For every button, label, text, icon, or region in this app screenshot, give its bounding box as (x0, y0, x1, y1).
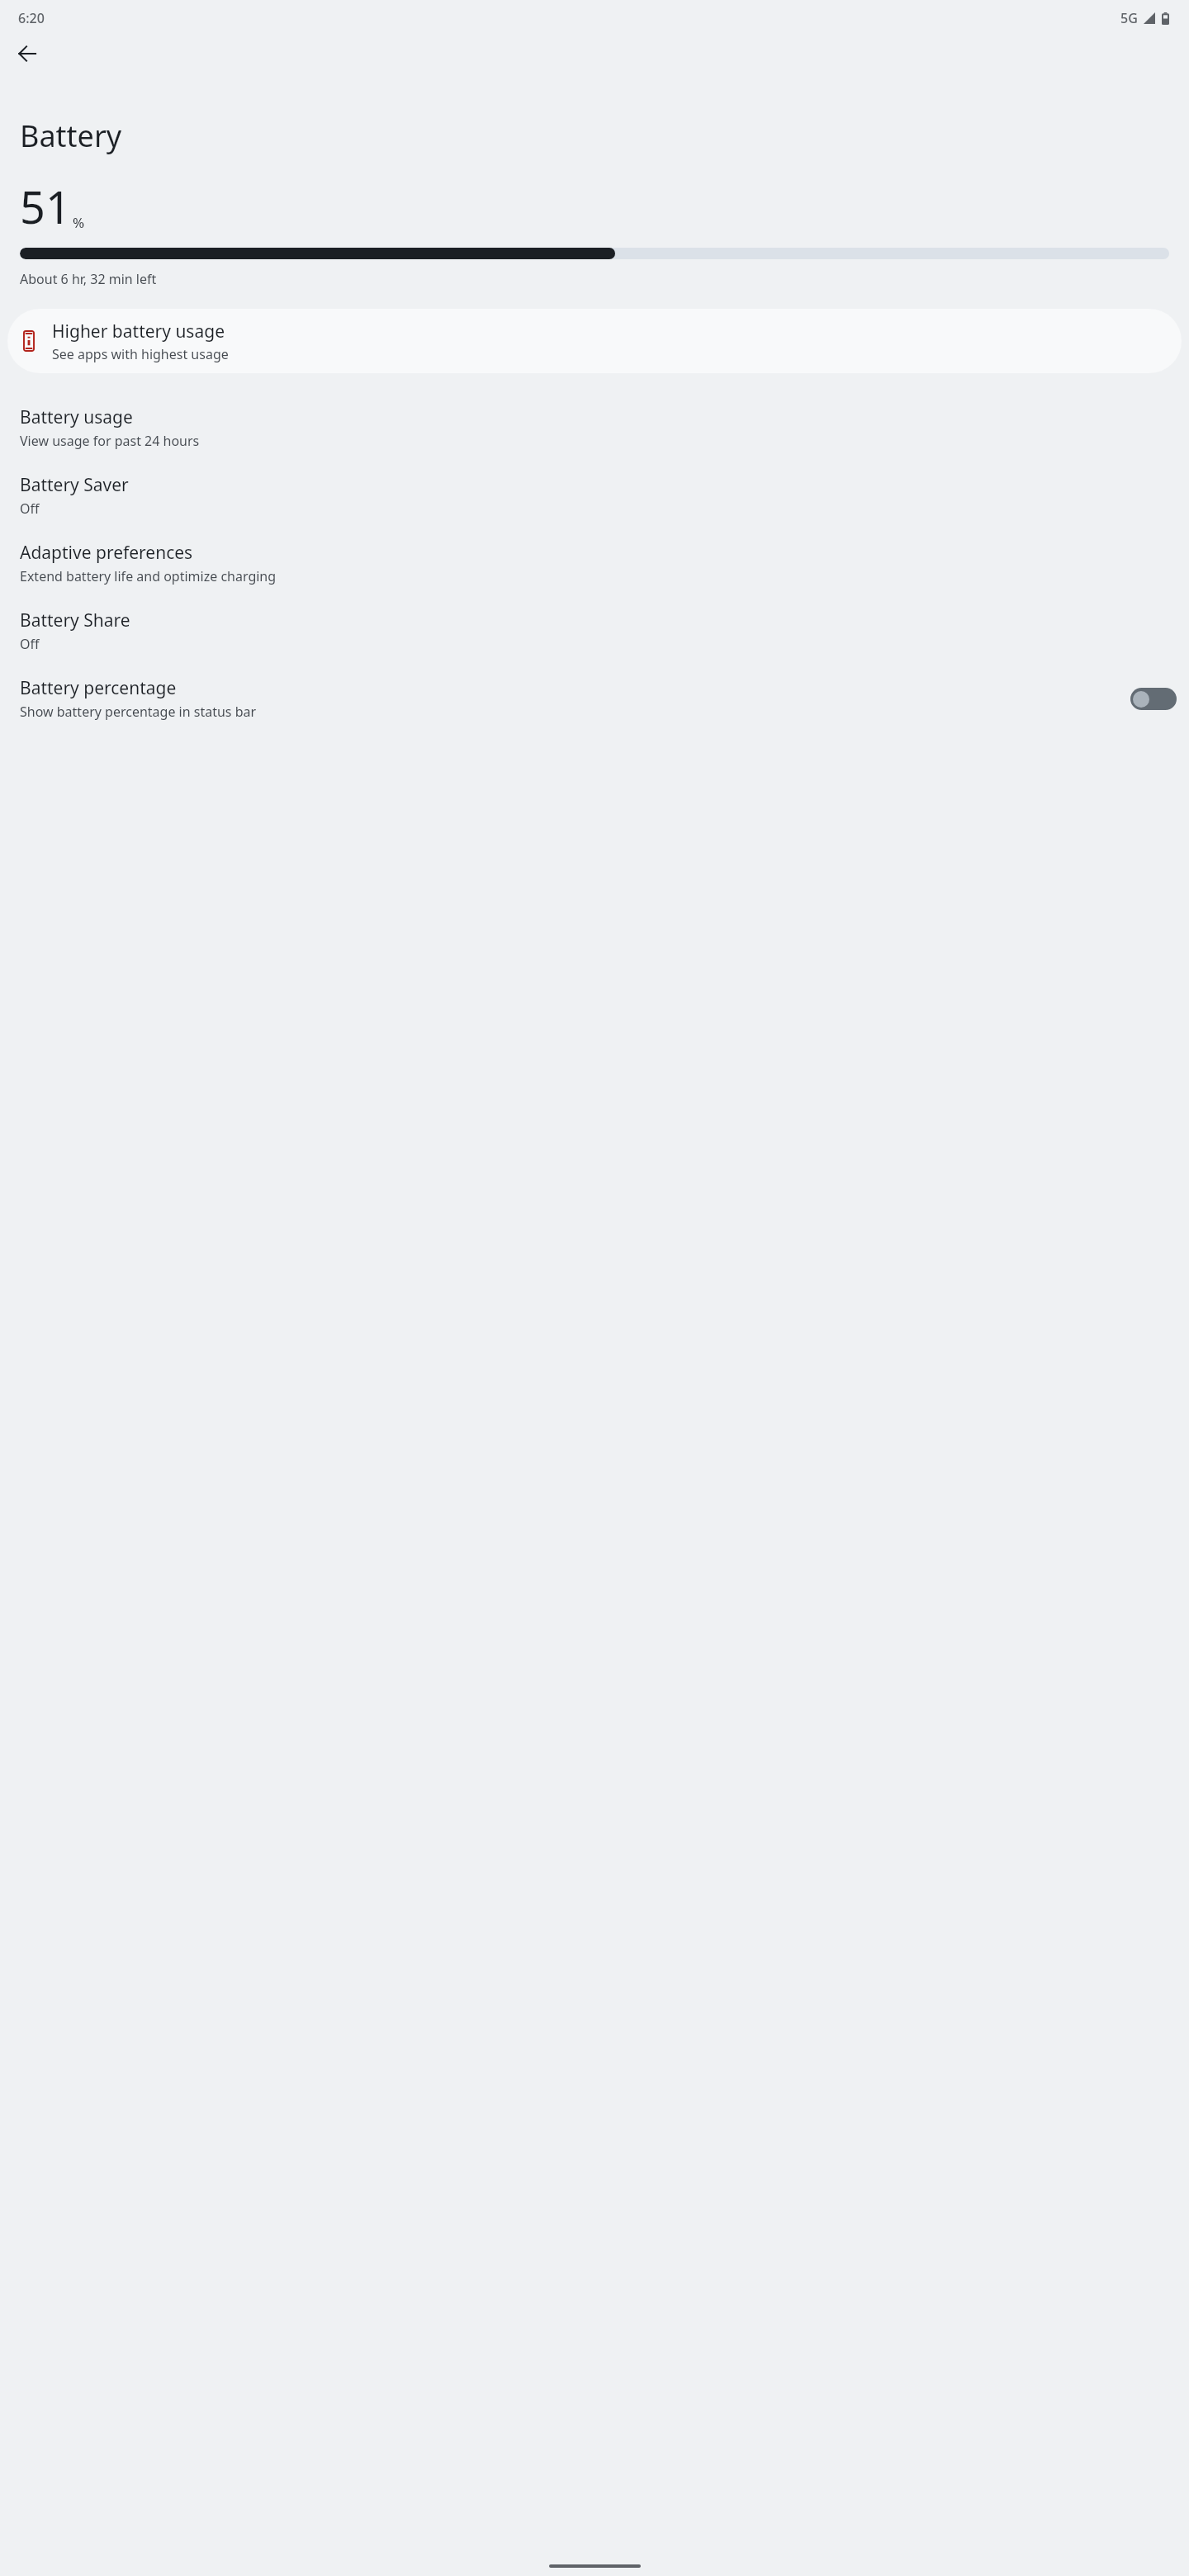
button[interactable]: Battery usage (0, 394, 1189, 462)
staticText: 5G (1120, 9, 1138, 27)
staticText: Higher battery usage (52, 320, 225, 343)
staticText: Battery (20, 116, 122, 156)
staticText: % (73, 213, 85, 232)
staticText: Extend battery life and optimize chargin… (20, 567, 277, 585)
button[interactable]: Battery percentage (0, 665, 1189, 732)
staticText: 6:20 (18, 9, 45, 27)
staticText: View usage for past 24 hours (20, 432, 200, 450)
button[interactable]: Battery Share (0, 597, 1189, 665)
staticText: Show battery percentage in status bar (20, 703, 257, 721)
staticText: Adaptive preferences (20, 541, 193, 565)
staticText: See apps with highest usage (52, 345, 229, 363)
button[interactable]: Higher battery usage (7, 309, 1182, 373)
staticText: 51 (20, 176, 71, 237)
staticText: Off (20, 500, 40, 518)
button[interactable]: Battery Saver (0, 462, 1189, 529)
button[interactable]: Adaptive preferences (0, 529, 1189, 597)
staticText: Battery Saver (20, 473, 129, 497)
button[interactable]: Back (7, 34, 47, 73)
staticText: Battery percentage (20, 676, 177, 700)
staticText: About 6 hr, 32 min left (20, 270, 157, 288)
staticText: Battery Share (20, 608, 130, 632)
staticText: Battery usage (20, 405, 133, 429)
button[interactable]: Battery percentage toggle (1130, 688, 1177, 710)
staticText: Off (20, 635, 40, 653)
